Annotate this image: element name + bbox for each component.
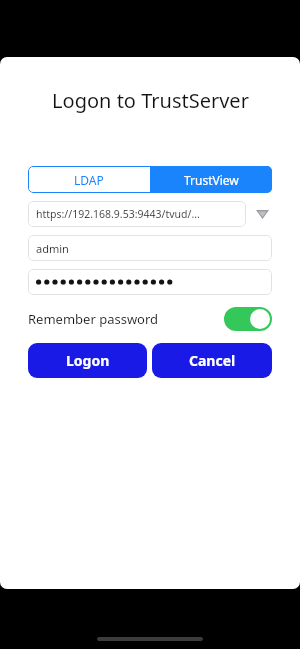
- button[interactable]: Logon: [28, 343, 147, 378]
- button[interactable]: TrustView: [150, 166, 272, 193]
- staticText: TrustView: [184, 172, 239, 188]
- button[interactable]: admin: [28, 235, 272, 261]
- button[interactable]: LDAP: [28, 166, 150, 193]
- staticText: admin: [36, 241, 69, 256]
- button[interactable]: Show server list: [252, 204, 272, 224]
- staticText: Cancel: [189, 351, 236, 370]
- button[interactable]: https://192.168.9.53:9443/tvud/...: [28, 201, 246, 227]
- button[interactable]: [28, 269, 272, 295]
- button[interactable]: Cancel: [152, 343, 272, 378]
- button[interactable]: Remember password toggle, on: [224, 307, 272, 331]
- staticText: Remember password: [28, 310, 159, 328]
- staticText: Logon: [66, 351, 110, 370]
- staticText: https://192.168.9.53:9443/tvud/...: [36, 207, 200, 221]
- staticText: Logon to TrustServer: [52, 87, 249, 114]
- staticText: LDAP: [74, 172, 104, 188]
